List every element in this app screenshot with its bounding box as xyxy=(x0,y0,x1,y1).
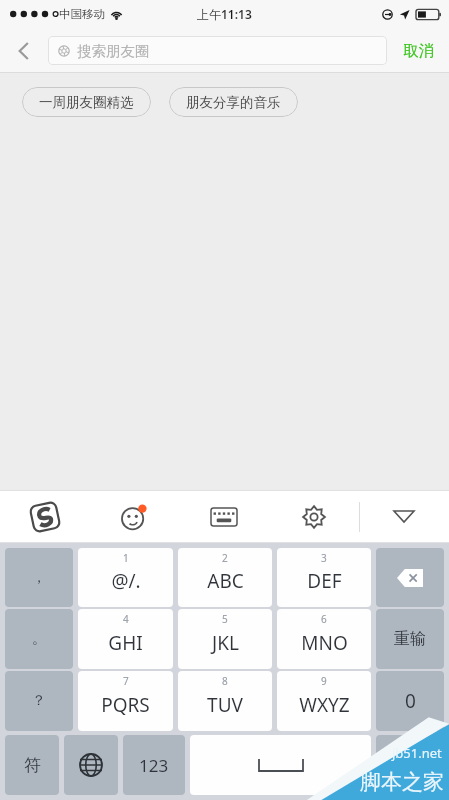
staticText: 2 xyxy=(222,551,228,565)
staticText: 取消 xyxy=(403,41,434,61)
staticText: 搜索朋友圈 xyxy=(77,42,150,60)
staticText: ABC xyxy=(207,568,244,594)
button[interactable]: 9 xyxy=(277,671,371,731)
button[interactable]: 朋友分享的音乐 xyxy=(169,87,298,117)
staticText: 脚本之家 xyxy=(360,769,444,795)
button[interactable]: 设置 xyxy=(269,490,359,543)
staticText: 重输 xyxy=(394,629,426,649)
button[interactable]: 3 xyxy=(277,548,371,607)
staticText: 符 xyxy=(24,755,41,776)
staticText: ？ xyxy=(32,692,46,710)
staticText: 3 xyxy=(321,551,327,565)
staticText: GHI xyxy=(108,630,143,656)
button[interactable]: 123 xyxy=(123,735,185,795)
staticText: 5 xyxy=(222,612,228,626)
button[interactable]: 重输 xyxy=(376,609,444,669)
button[interactable]: 中 xyxy=(376,735,444,795)
button[interactable]: 取消 xyxy=(387,28,449,73)
button[interactable]: 一周朋友圈精选 xyxy=(22,87,151,117)
staticText: 123 xyxy=(139,754,169,777)
button[interactable]: 5 xyxy=(178,609,272,669)
button[interactable]: 返回 xyxy=(0,28,48,73)
staticText: 4 xyxy=(123,612,129,626)
staticText: WXYZ xyxy=(299,692,350,718)
button[interactable]: 8 xyxy=(178,671,272,731)
button[interactable]: 收起键盘 xyxy=(374,490,434,543)
button[interactable]: 空格 xyxy=(190,735,371,795)
staticText: 。 xyxy=(32,630,46,648)
button[interactable]: 切换语言 xyxy=(64,735,118,795)
staticText: 1 xyxy=(123,551,129,565)
button[interactable]: ？ xyxy=(5,671,73,731)
button[interactable]: 0 xyxy=(376,671,444,731)
staticText: TUV xyxy=(207,692,243,718)
staticText: 一周朋友圈精选 xyxy=(39,94,134,111)
button[interactable]: 符 xyxy=(5,735,59,795)
button[interactable]: 表情 xyxy=(89,490,179,543)
staticText: ， xyxy=(32,569,46,587)
button[interactable]: 输入法 xyxy=(0,490,89,543)
staticText: 朋友分享的音乐 xyxy=(186,94,281,111)
staticText: PQRS xyxy=(101,692,150,718)
staticText: MNO xyxy=(301,630,348,656)
staticText: 上午11:13 xyxy=(197,6,252,22)
staticText: 7 xyxy=(123,674,129,688)
button[interactable]: 键盘 xyxy=(179,490,269,543)
staticText: 0 xyxy=(405,688,416,714)
button[interactable]: 删除 xyxy=(376,548,444,607)
button[interactable]: 7 xyxy=(78,671,173,731)
staticText: DEF xyxy=(307,568,342,594)
button[interactable]: 6 xyxy=(277,609,371,669)
staticText: JKL xyxy=(212,630,239,656)
staticText: 9 xyxy=(321,674,327,688)
button[interactable]: 搜索朋友圈 xyxy=(48,36,387,65)
staticText: @/. xyxy=(111,568,141,594)
button[interactable]: 4 xyxy=(78,609,173,669)
button[interactable]: 2 xyxy=(178,548,272,607)
staticText: 中 xyxy=(402,755,419,776)
button[interactable]: ， xyxy=(5,548,73,607)
staticText: 8 xyxy=(222,674,228,688)
staticText: 6 xyxy=(321,612,327,626)
staticText: jb51.net xyxy=(392,744,442,762)
button[interactable]: 1 xyxy=(78,548,173,607)
staticText: 中国移动 xyxy=(59,7,105,21)
